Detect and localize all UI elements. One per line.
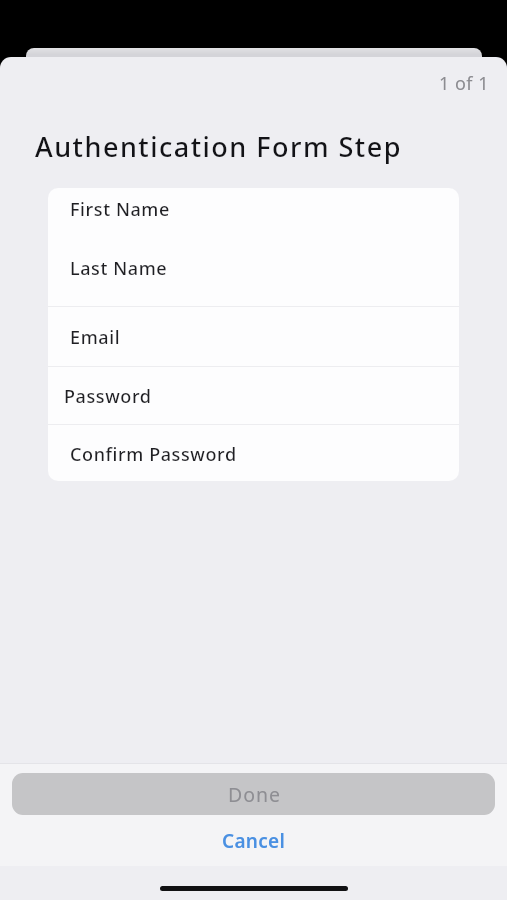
other: Home indicator <box>160 886 348 891</box>
staticText: Password <box>64 384 152 409</box>
button[interactable]: Cancel <box>0 815 507 866</box>
staticText: 1 of 1 <box>439 71 490 93</box>
staticText: Last Name <box>70 256 168 281</box>
staticText: Authentication Form Step <box>35 128 402 165</box>
staticText: Done <box>228 781 282 808</box>
button[interactable]: First Name <box>48 188 459 247</box>
staticText: First Name <box>70 197 170 222</box>
button[interactable]: Email <box>48 307 459 366</box>
staticText: Email <box>70 325 121 350</box>
staticText: Confirm Password <box>70 442 237 467</box>
button[interactable]: Done <box>12 773 495 815</box>
button[interactable]: Last Name <box>48 247 459 306</box>
staticText: Cancel <box>222 828 286 854</box>
button[interactable]: Password <box>48 367 459 424</box>
button[interactable]: Confirm Password <box>48 425 459 481</box>
